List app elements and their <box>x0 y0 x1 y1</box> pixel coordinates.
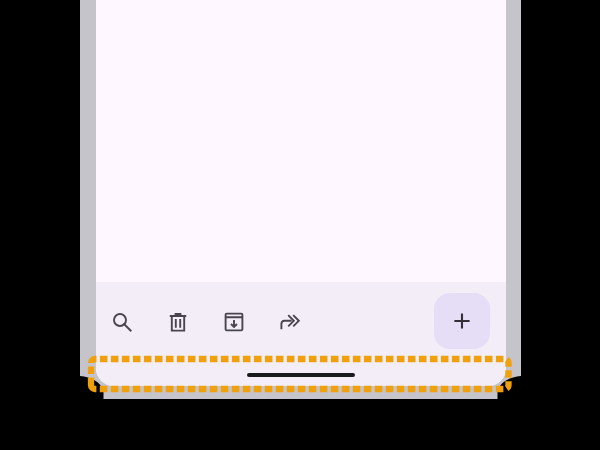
button[interactable]: Add <box>434 293 490 349</box>
button[interactable]: Search <box>96 294 150 350</box>
button[interactable]: Forward <box>262 294 318 350</box>
button[interactable]: Delete <box>150 294 206 350</box>
button[interactable]: Archive <box>206 294 262 350</box>
